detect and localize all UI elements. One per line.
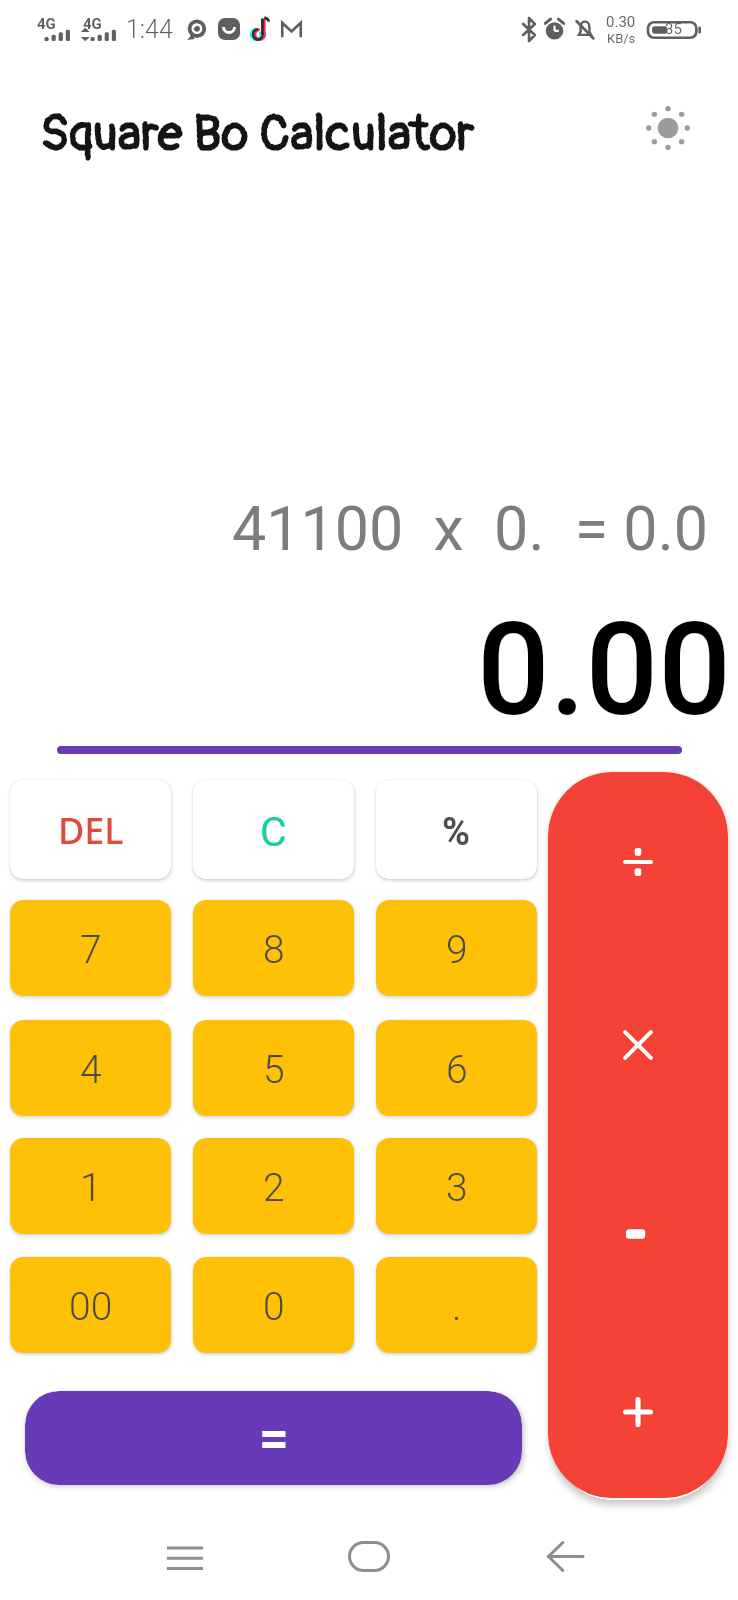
button[interactable]: Brightness: [638, 98, 698, 158]
staticText: 0: [263, 1284, 285, 1330]
staticText: 00: [69, 1284, 113, 1330]
staticText: 4: [80, 1047, 102, 1093]
staticText: 41100 x 0. = 0.0: [0, 493, 708, 564]
button[interactable]: 2: [193, 1138, 354, 1234]
staticText: 6: [446, 1047, 468, 1093]
staticText: 35: [665, 20, 682, 38]
button[interactable]: =: [25, 1391, 522, 1485]
staticText: 1:44: [126, 15, 173, 44]
button[interactable]: 5: [193, 1020, 354, 1116]
staticText: Square Bo Calculator: [40, 103, 475, 165]
staticText: 0.30: [606, 13, 636, 31]
staticText: 4G: [37, 15, 56, 33]
button[interactable]: C: [193, 780, 354, 879]
button[interactable]: Divide: [548, 774, 728, 950]
staticText: 5: [263, 1047, 285, 1093]
staticText: 0.00: [0, 595, 731, 745]
button[interactable]: 1: [10, 1138, 171, 1234]
staticText: 3: [446, 1165, 468, 1211]
staticText: 2: [263, 1165, 285, 1211]
button[interactable]: Plus: [548, 1325, 728, 1498]
staticText: DEL: [58, 806, 124, 855]
button[interactable]: Home: [309, 1516, 429, 1596]
button[interactable]: 00: [10, 1257, 171, 1353]
button[interactable]: 7: [10, 900, 171, 996]
staticText: .: [452, 1284, 462, 1330]
staticText: %: [442, 810, 471, 855]
staticText: =: [259, 1408, 289, 1469]
button[interactable]: %: [376, 780, 537, 879]
staticText: 7: [80, 927, 102, 973]
button[interactable]: Back: [505, 1516, 625, 1596]
staticText: 8: [263, 927, 285, 973]
button[interactable]: Recents: [125, 1516, 245, 1596]
staticText: 1: [80, 1165, 102, 1211]
button[interactable]: 9: [376, 900, 537, 996]
button[interactable]: 3: [376, 1138, 537, 1234]
staticText: 9: [446, 927, 468, 973]
button[interactable]: .: [376, 1257, 537, 1353]
button[interactable]: Minus: [548, 1146, 728, 1322]
staticText: 4G: [83, 15, 102, 33]
button[interactable]: 8: [193, 900, 354, 996]
button[interactable]: DEL: [10, 780, 171, 879]
button[interactable]: 4: [10, 1020, 171, 1116]
button[interactable]: Multiply: [548, 957, 728, 1133]
button[interactable]: 0: [193, 1257, 354, 1353]
staticText: C: [260, 808, 287, 856]
button[interactable]: 6: [376, 1020, 537, 1116]
staticText: KB/s: [607, 31, 636, 46]
